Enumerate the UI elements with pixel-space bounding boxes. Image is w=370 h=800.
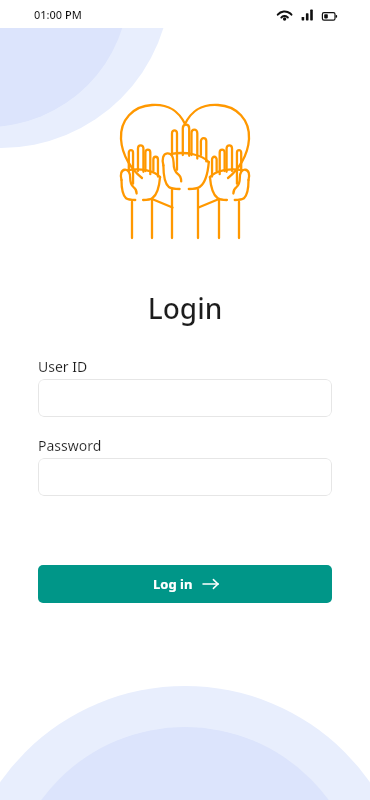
- button[interactable]: [38, 458, 332, 496]
- button[interactable]: Log in: [38, 565, 332, 603]
- staticText: User ID: [38, 357, 88, 376]
- other: App logo: [0, 0, 370, 800]
- staticText: 01:00 PM: [34, 7, 82, 22]
- staticText: Password: [38, 436, 102, 455]
- staticText: Log in: [153, 575, 193, 593]
- staticText: Login: [0, 289, 370, 327]
- button[interactable]: [38, 379, 332, 417]
